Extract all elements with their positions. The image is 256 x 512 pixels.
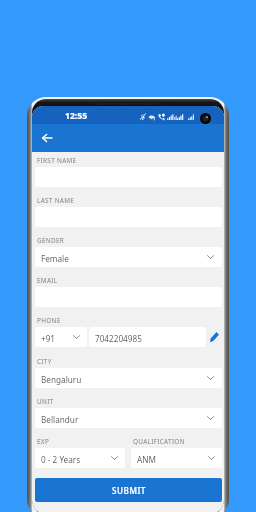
- button[interactable]: Edit phone number: [206, 327, 222, 347]
- staticText: Bellandur: [41, 414, 79, 425]
- staticText: 12:55: [65, 110, 88, 122]
- staticText: Female: [41, 253, 69, 264]
- button[interactable]: Bengaluru: [35, 368, 222, 388]
- staticText: 7042204985: [95, 333, 142, 344]
- staticText: FIRST NAME: [37, 156, 77, 165]
- button[interactable]: 7042204985: [89, 327, 206, 347]
- button[interactable]: +91: [35, 327, 87, 347]
- staticText: EXP: [37, 437, 50, 446]
- staticText: ANM: [137, 454, 156, 465]
- button[interactable]: ANM: [131, 448, 222, 468]
- staticText: Bengaluru: [41, 374, 82, 385]
- staticText: LAST NAME: [37, 196, 75, 205]
- staticText: CITY: [37, 357, 52, 366]
- staticText: GENDER: [37, 236, 65, 245]
- button[interactable]: 0 - 2 Years: [35, 448, 125, 468]
- staticText: QUALIFICATION: [133, 437, 185, 446]
- button[interactable]: SUBMIT: [35, 478, 222, 502]
- button[interactable]: Bellandur: [35, 408, 222, 428]
- staticText: 0 - 2 Years: [41, 454, 81, 465]
- staticText: EMAIL: [37, 276, 58, 285]
- staticText: +91: [41, 333, 56, 344]
- button[interactable]: Female: [35, 247, 222, 267]
- staticText: UNIT: [37, 397, 54, 406]
- button[interactable]: Back: [37, 128, 57, 148]
- staticText: SUBMIT: [112, 485, 146, 496]
- staticText: PHONE: [37, 316, 61, 325]
